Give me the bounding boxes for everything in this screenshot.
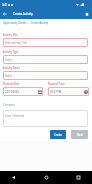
staticText: Back: [77, 133, 83, 136]
staticText: 24/10/2023: [5, 90, 19, 94]
button[interactable]: Select: [3, 71, 88, 80]
staticText: 02:37 PM: [50, 90, 62, 94]
button[interactable]: Enter Comment: [3, 110, 88, 127]
button[interactable]: Enter Activity Title: [3, 38, 88, 47]
button[interactable]: Create Activity: [31, 21, 49, 24]
staticText: 3:47: [2, 3, 8, 6]
staticText: Create: [54, 133, 62, 136]
staticText: Comment: [3, 103, 16, 107]
staticText: Enter Activity Title: [5, 41, 27, 45]
button[interactable]: 02:37 PM: [48, 87, 89, 96]
button[interactable]: Back: [0, 9, 10, 19]
button[interactable]: Recent apps: [74, 173, 83, 182]
staticText: Planned Date: [3, 82, 20, 86]
button[interactable]: Back: [71, 130, 88, 139]
button[interactable]: Select: [3, 55, 88, 64]
staticText: Activity Status: [3, 66, 21, 70]
staticText: Create Activity: [13, 12, 33, 16]
staticText: Planned Time: [48, 82, 65, 86]
staticText: Activity Type: [3, 50, 19, 54]
staticText: ›: [27, 21, 31, 24]
button[interactable]: Back: [9, 173, 18, 182]
staticText: Select: [5, 58, 13, 62]
button[interactable]: Create: [50, 130, 66, 139]
button[interactable]: Home: [82, 9, 92, 19]
staticText: Select: [5, 74, 13, 78]
button[interactable]: 24/10/2023: [3, 87, 43, 96]
button[interactable]: Home: [42, 173, 51, 182]
staticText: Activity Title: [3, 33, 18, 37]
staticText: Enter Comment: [5, 114, 25, 118]
button[interactable]: Opportunity Details: [3, 21, 27, 24]
